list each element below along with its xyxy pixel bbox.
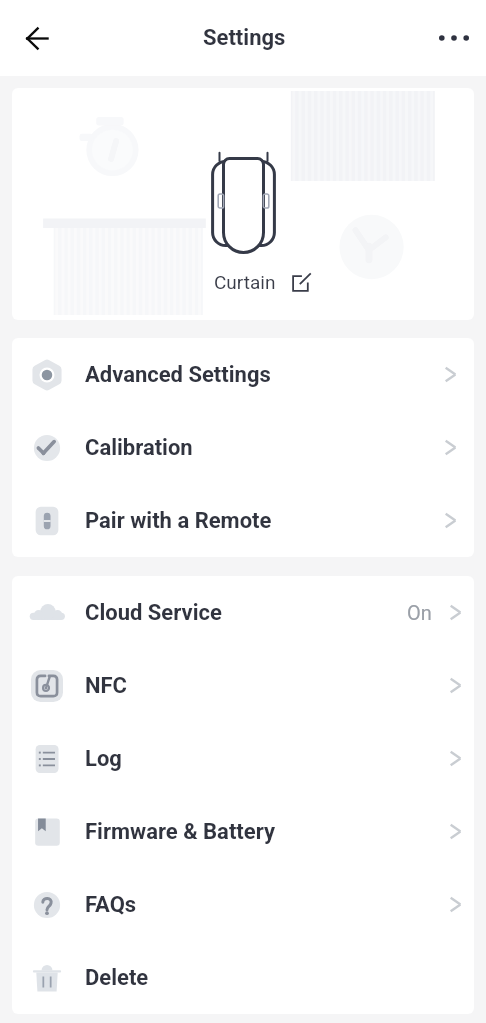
staticText: Pair with a Remote <box>85 508 272 534</box>
button[interactable]: Calibration <box>12 411 474 484</box>
staticText: Delete <box>85 965 149 991</box>
staticText: On <box>407 601 432 624</box>
staticText: Settings <box>203 25 286 51</box>
button[interactable]: Advanced Settings <box>12 338 474 411</box>
staticText: Advanced Settings <box>85 362 271 388</box>
button[interactable]: Rename device <box>291 272 312 293</box>
button[interactable]: Cloud Service <box>12 576 474 649</box>
staticText: FAQs <box>85 892 137 918</box>
button[interactable]: Back <box>9 8 65 68</box>
staticText: Calibration <box>85 435 193 461</box>
button[interactable]: Log <box>12 722 474 795</box>
staticText: NFC <box>85 673 127 699</box>
staticText: Cloud Service <box>85 600 222 626</box>
button[interactable]: FAQs <box>12 868 474 941</box>
staticText: Firmware & Battery <box>85 819 275 845</box>
button[interactable]: More options <box>426 8 482 68</box>
staticText: Curtain <box>214 271 276 293</box>
button[interactable]: Delete <box>12 941 474 1014</box>
button[interactable]: NFC <box>12 649 474 722</box>
staticText: Log <box>85 746 122 772</box>
button[interactable]: Firmware & Battery <box>12 795 474 868</box>
button[interactable]: Pair with a Remote <box>12 484 474 557</box>
